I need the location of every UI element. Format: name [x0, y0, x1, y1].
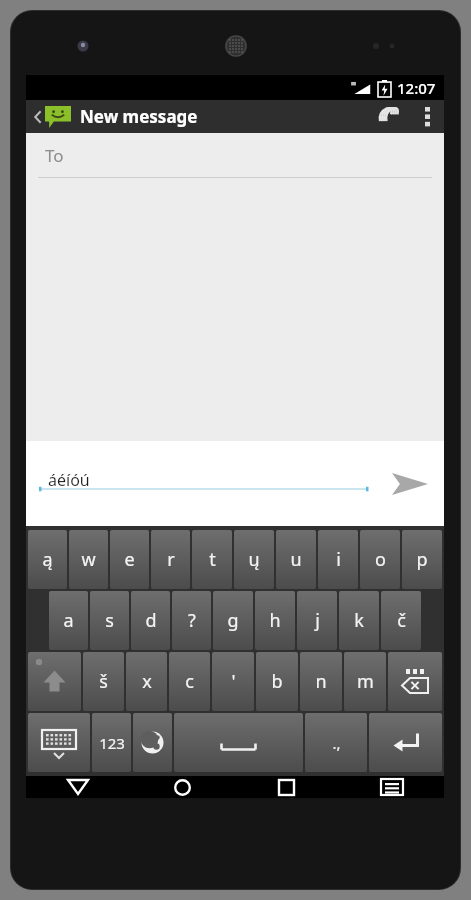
staticText: h	[269, 608, 281, 633]
staticText: o	[375, 547, 386, 572]
button[interactable]: b	[256, 652, 298, 711]
staticText: ą	[42, 547, 53, 572]
button[interactable]: To	[26, 133, 444, 178]
button[interactable]: ?	[172, 591, 211, 650]
button[interactable]: r	[151, 530, 190, 589]
staticText: áéíóú	[48, 469, 90, 491]
staticText: To	[45, 144, 64, 167]
button[interactable]: Home	[130, 776, 234, 798]
button[interactable]: č	[381, 591, 421, 650]
button[interactable]: m	[344, 652, 386, 711]
button[interactable]: h	[255, 591, 295, 650]
staticText: e	[124, 547, 135, 572]
button[interactable]: k	[339, 591, 379, 650]
button[interactable]: 123	[92, 713, 131, 772]
button[interactable]: Back	[30, 106, 74, 128]
button[interactable]: s	[90, 591, 129, 650]
button[interactable]: Shift	[28, 652, 81, 711]
staticText: r	[167, 547, 175, 572]
staticText: š	[99, 669, 108, 694]
button[interactable]: w	[69, 530, 108, 589]
button[interactable]: More options	[410, 100, 444, 133]
button[interactable]: .,	[305, 713, 367, 772]
staticText: s	[105, 608, 114, 633]
staticText: ų	[248, 547, 260, 572]
staticText: g	[227, 608, 239, 633]
button[interactable]: Send	[376, 441, 444, 526]
button[interactable]: Back	[26, 776, 130, 798]
button[interactable]: š	[83, 652, 124, 711]
staticText: m	[357, 669, 374, 694]
staticText: w	[81, 547, 96, 572]
button[interactable]: p	[402, 530, 442, 589]
staticText: x	[142, 669, 152, 694]
staticText: .,	[332, 733, 341, 753]
button[interactable]: '	[212, 652, 254, 711]
button[interactable]: o	[360, 530, 400, 589]
staticText: 12:07	[397, 78, 436, 98]
button[interactable]: Hide keyboard	[28, 713, 90, 772]
staticText: p	[416, 547, 428, 572]
staticText: i	[336, 547, 341, 572]
staticText: a	[63, 608, 74, 633]
staticText: u	[290, 547, 302, 572]
button[interactable]: Switch keyboard	[339, 776, 444, 798]
button[interactable]: u	[276, 530, 316, 589]
staticText: c	[185, 669, 194, 694]
button[interactable]: Attach	[366, 100, 410, 133]
staticText: j	[315, 608, 320, 633]
button[interactable]: a	[49, 591, 88, 650]
staticText: ?	[188, 608, 196, 633]
staticText: 123	[99, 733, 125, 753]
button[interactable]: Space	[174, 713, 303, 772]
staticText: New message	[80, 105, 198, 128]
button[interactable]: Delete	[388, 652, 442, 711]
staticText: '	[231, 669, 236, 694]
button[interactable]: n	[300, 652, 342, 711]
button[interactable]: t	[192, 530, 232, 589]
button[interactable]: ų	[234, 530, 274, 589]
button[interactable]: j	[297, 591, 337, 650]
staticText: d	[145, 608, 157, 633]
staticText: k	[354, 608, 364, 633]
button[interactable]: Recents	[234, 776, 339, 798]
button[interactable]: ą	[28, 530, 67, 589]
button[interactable]: g	[213, 591, 253, 650]
button[interactable]: Change language	[133, 713, 172, 772]
button[interactable]: áéíóú	[26, 469, 376, 499]
button[interactable]: c	[169, 652, 210, 711]
staticText: č	[397, 608, 406, 633]
button[interactable]: e	[110, 530, 149, 589]
staticText: n	[315, 669, 327, 694]
button[interactable]: d	[131, 591, 170, 650]
button[interactable]: i	[318, 530, 358, 589]
button[interactable]: x	[126, 652, 167, 711]
staticText: b	[271, 669, 283, 694]
staticText: t	[209, 547, 216, 572]
button[interactable]: Enter	[369, 713, 442, 772]
